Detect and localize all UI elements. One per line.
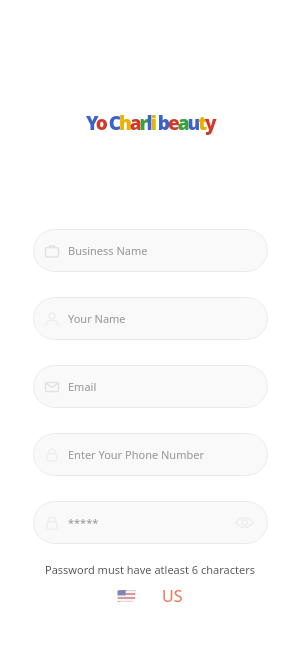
staticText: US: [162, 585, 183, 607]
staticText: Your Name: [68, 311, 126, 326]
staticText: Password must have atleast 6 characters: [45, 562, 256, 577]
button[interactable]: Email: [33, 365, 268, 408]
staticText: Business Name: [68, 243, 148, 258]
staticText: *****: [68, 515, 99, 530]
button[interactable]: US: [117, 585, 183, 607]
staticText: Yo Charli beauty: [86, 110, 215, 136]
button[interactable]: *****: [33, 501, 268, 544]
button[interactable]: Enter Your Phone Number: [33, 433, 268, 476]
staticText: Enter Your Phone Number: [68, 447, 204, 462]
button[interactable]: Your Name: [33, 297, 268, 340]
button[interactable]: Business Name: [33, 229, 268, 272]
staticText: Email: [68, 379, 97, 394]
